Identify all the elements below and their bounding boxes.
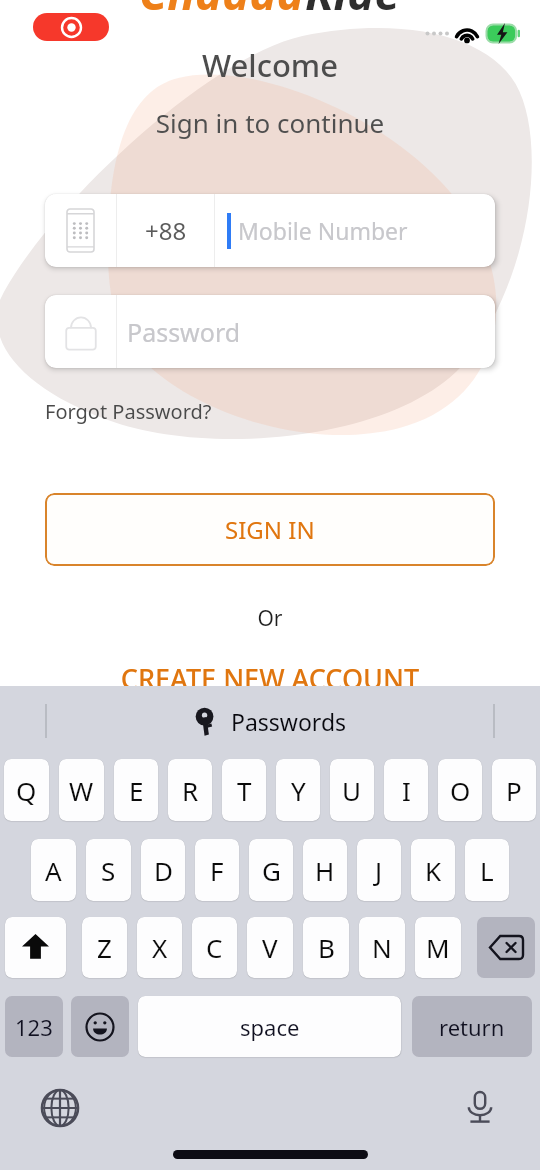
staticText: +88 xyxy=(145,214,187,247)
staticText: R xyxy=(182,773,199,808)
staticText: S xyxy=(101,853,116,888)
staticText: F xyxy=(210,853,224,888)
staticText: Ride xyxy=(305,0,401,14)
button[interactable]: SIGN IN xyxy=(45,493,495,566)
staticText: X xyxy=(152,930,168,965)
button[interactable]: Y xyxy=(276,759,320,821)
button[interactable]: J xyxy=(357,839,401,901)
staticText: E xyxy=(129,773,144,808)
staticText: D xyxy=(154,853,173,888)
button[interactable]: Z xyxy=(82,917,127,978)
staticText: H xyxy=(315,853,335,888)
staticText: U xyxy=(342,773,362,808)
button[interactable]: Change keyboard xyxy=(40,1088,80,1128)
staticText: SIGN IN xyxy=(225,513,315,546)
button[interactable]: P xyxy=(492,759,536,821)
button[interactable]: 123 xyxy=(5,996,63,1057)
button[interactable]: H xyxy=(303,839,347,901)
button[interactable]: F xyxy=(195,839,239,901)
button[interactable]: O xyxy=(438,759,482,821)
staticText: G xyxy=(262,853,281,888)
staticText: V xyxy=(262,930,278,965)
staticText: M xyxy=(426,930,450,965)
staticText: I xyxy=(402,773,411,808)
button[interactable]: Shift xyxy=(5,917,66,978)
button[interactable]: +88 xyxy=(45,194,495,267)
button[interactable]: X xyxy=(137,917,182,978)
button[interactable]: C xyxy=(192,917,237,978)
button[interactable]: U xyxy=(330,759,374,821)
button[interactable]: CREATE NEW ACCOUNT xyxy=(0,660,540,697)
staticText: T xyxy=(237,773,252,808)
button[interactable]: Q xyxy=(4,759,49,821)
button[interactable]: Emoji xyxy=(71,996,129,1057)
button[interactable]: Dictation xyxy=(460,1088,500,1128)
staticText: Q xyxy=(16,773,37,808)
button[interactable]: G xyxy=(249,839,293,901)
button[interactable]: K xyxy=(411,839,455,901)
staticText: J xyxy=(375,853,383,888)
staticText: W xyxy=(69,773,94,808)
button[interactable]: Backspace xyxy=(477,917,535,978)
button[interactable]: A xyxy=(31,839,76,901)
button[interactable]: S xyxy=(86,839,131,901)
staticText: N xyxy=(372,930,392,965)
staticText: Password xyxy=(127,315,241,349)
staticText: O xyxy=(450,773,471,808)
staticText: P xyxy=(506,773,522,808)
staticText: 123 xyxy=(15,1012,53,1042)
staticText: Welcome xyxy=(0,44,540,86)
staticText: A xyxy=(45,853,62,888)
button[interactable]: M xyxy=(415,917,461,978)
button[interactable]: Passwords xyxy=(186,702,355,741)
button[interactable]: return xyxy=(412,996,532,1057)
staticText: B xyxy=(318,930,335,965)
staticText: Or xyxy=(0,604,540,633)
staticText: K xyxy=(425,853,442,888)
button[interactable]: N xyxy=(359,917,405,978)
staticText: space xyxy=(240,1012,300,1042)
staticText: Z xyxy=(97,930,112,965)
button[interactable]: R xyxy=(168,759,212,821)
staticText: Mobile Number xyxy=(238,215,408,246)
button[interactable]: E xyxy=(114,759,158,821)
staticText: Y xyxy=(291,773,306,808)
staticText: L xyxy=(480,853,494,888)
button[interactable]: T xyxy=(222,759,266,821)
staticText: C xyxy=(206,930,223,965)
button[interactable]: V xyxy=(247,917,293,978)
staticText: Sign in to continue xyxy=(0,105,540,140)
staticText: Passwords xyxy=(231,706,347,737)
button[interactable]: D xyxy=(141,839,185,901)
staticText: Chadda xyxy=(139,0,305,14)
button[interactable]: space xyxy=(138,996,401,1057)
button[interactable]: I xyxy=(384,759,428,821)
button[interactable]: W xyxy=(59,759,104,821)
button[interactable]: Password xyxy=(45,295,495,368)
button[interactable]: Forgot Password? xyxy=(45,398,212,425)
staticText: return xyxy=(439,1012,505,1042)
button[interactable]: B xyxy=(303,917,349,978)
button[interactable]: Screen recording xyxy=(33,13,109,41)
button[interactable]: L xyxy=(465,839,509,901)
